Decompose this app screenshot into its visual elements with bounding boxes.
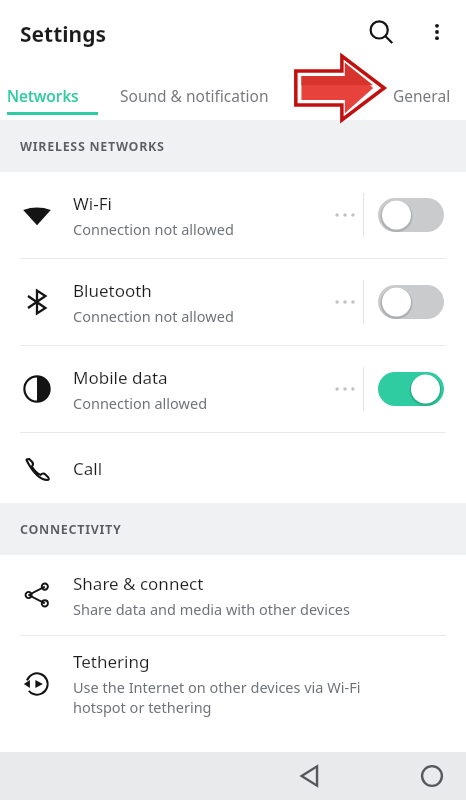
button[interactable]: Share & connect (0, 555, 466, 635)
button[interactable]: Call (0, 433, 466, 503)
staticText: Networks (7, 85, 79, 106)
button[interactable]: Mobile data (0, 346, 466, 432)
button[interactable]: Wi-Fi (0, 172, 466, 258)
button[interactable] (378, 372, 444, 406)
staticText: Mobile data (73, 366, 168, 389)
staticText: Sound & notification (120, 85, 269, 106)
staticText: General (393, 85, 451, 106)
button[interactable] (378, 198, 444, 232)
staticText: Use the Internet on other devices via Wi… (73, 677, 361, 718)
button[interactable]: Home (199, 752, 466, 800)
staticText: Call (73, 457, 103, 480)
button[interactable]: Networks (0, 64, 105, 120)
staticText: Bluetooth (73, 279, 152, 302)
staticText: CONNECTIVITY (20, 521, 122, 538)
button[interactable]: Search (357, 8, 405, 56)
button[interactable]: General (380, 64, 466, 120)
staticText: Connection allowed (73, 393, 208, 413)
staticText: Connection not allowed (73, 219, 234, 239)
button[interactable]: Tethering (0, 636, 466, 731)
button[interactable]: Bluetooth (0, 259, 466, 345)
button[interactable]: More options (413, 8, 461, 56)
button[interactable]: Back (77, 752, 466, 800)
button[interactable]: Sound & notification (107, 64, 297, 120)
button[interactable]: Recent apps (321, 752, 466, 800)
button[interactable] (378, 285, 444, 319)
staticText: Connection not allowed (73, 306, 234, 326)
staticText: Settings (20, 20, 107, 49)
staticText: Share data and media with other devices (73, 599, 350, 619)
staticText: Share & connect (73, 572, 204, 595)
staticText: Wi-Fi (73, 192, 112, 215)
staticText: Tethering (73, 650, 150, 673)
staticText: WIRELESS NETWORKS (20, 138, 165, 155)
